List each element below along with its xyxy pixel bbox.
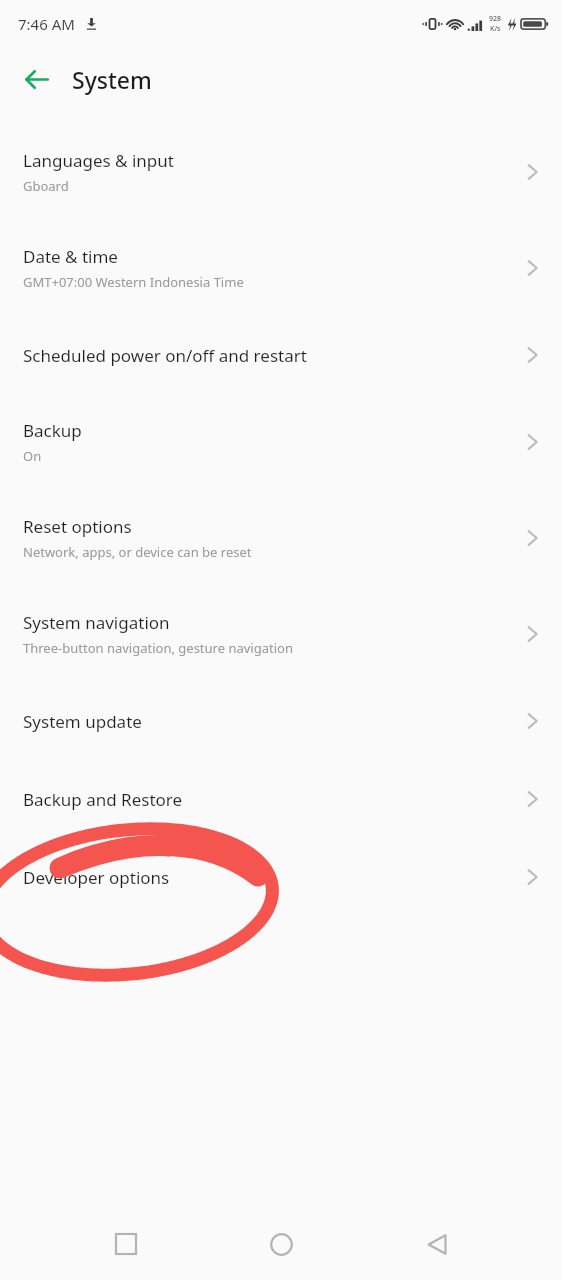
button[interactable]: Languages & input [0, 124, 562, 220]
staticText: Date & time [23, 245, 118, 268]
button[interactable]: System update [0, 682, 562, 760]
staticText: System update [23, 710, 142, 733]
staticText: 928 [489, 14, 502, 24]
button[interactable]: Home [251, 1214, 311, 1274]
staticText: Three-button navigation, gesture navigat… [23, 639, 293, 657]
staticText: Backup [23, 419, 82, 442]
button[interactable]: Developer options [0, 838, 562, 916]
staticText: 7:46 AM [18, 14, 75, 34]
button[interactable]: Scheduled power on/off and restart [0, 316, 562, 394]
staticText: System [72, 64, 152, 95]
button[interactable]: Back [12, 55, 60, 103]
staticText: Languages & input [23, 149, 174, 172]
button[interactable]: Recent apps [96, 1214, 156, 1274]
button[interactable]: Backup [0, 394, 562, 490]
staticText: Network, apps, or device can be reset [23, 543, 252, 561]
button[interactable]: System navigation [0, 586, 562, 682]
staticText: Gboard [23, 177, 69, 195]
staticText: Reset options [23, 515, 132, 538]
staticText: Scheduled power on/off and restart [23, 344, 307, 367]
staticText: On [23, 447, 42, 465]
button[interactable]: Back [407, 1214, 467, 1274]
staticText: Developer options [23, 866, 170, 889]
button[interactable]: Backup and Restore [0, 760, 562, 838]
staticText: GMT+07:00 Western Indonesia Time [23, 273, 244, 291]
staticText: System navigation [23, 611, 170, 634]
staticText: K/s [490, 24, 501, 34]
button[interactable]: Reset options [0, 490, 562, 586]
button[interactable]: Date & time [0, 220, 562, 316]
staticText: Backup and Restore [23, 788, 183, 811]
